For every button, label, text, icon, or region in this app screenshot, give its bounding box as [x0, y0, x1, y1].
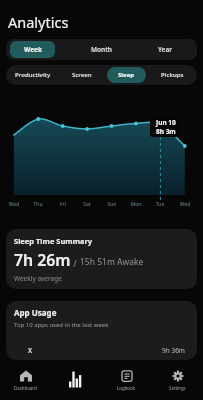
staticText: Wed: [174, 201, 196, 208]
button[interactable]: Month: [69, 39, 133, 60]
staticText: Sleep: [118, 71, 135, 79]
button[interactable]: Sleep Time Summary: [6, 229, 197, 289]
button[interactable]: Year: [133, 39, 197, 60]
button[interactable]: Dashboard: [0, 360, 50, 400]
staticText: Weekly average: [14, 274, 62, 283]
button[interactable]: Week: [6, 39, 69, 60]
staticText: Week: [24, 45, 42, 54]
staticText: Fri: [52, 201, 74, 208]
staticText: Pickups: [161, 71, 184, 79]
staticText: App Usage: [14, 307, 57, 318]
staticText: Month: [91, 45, 112, 54]
staticText: Sun: [101, 201, 123, 208]
staticText: /: [71, 257, 80, 269]
staticText: 15h 51m Awake: [80, 256, 144, 268]
staticText: Sat: [76, 201, 98, 208]
staticText: Screen: [72, 71, 92, 79]
staticText: Top 10 apps used in the last week: [14, 321, 109, 329]
button[interactable]: Screen: [59, 65, 105, 85]
staticText: Year: [158, 45, 173, 54]
staticText: Mon: [125, 201, 147, 208]
staticText: Logbook: [117, 385, 136, 391]
staticText: Analytics: [8, 12, 69, 32]
button[interactable]: Logbook: [101, 360, 152, 400]
button[interactable]: Productivity: [6, 65, 59, 85]
staticText: Dashboard: [14, 385, 37, 391]
button[interactable]: [50, 360, 101, 400]
button[interactable]: Sleep: [105, 65, 147, 85]
button[interactable]: Settings: [152, 360, 203, 400]
staticText: 9h 36m: [162, 346, 185, 355]
staticText: Sleep Time Summary: [14, 236, 93, 246]
button[interactable]: Pickups: [147, 65, 197, 85]
staticText: Thu: [27, 201, 49, 208]
staticText: 8h 3m: [156, 127, 176, 136]
staticText: 7h 26m: [14, 249, 71, 271]
staticText: Jun 10: [156, 118, 176, 127]
staticText: Tue: [149, 201, 171, 208]
staticText: X: [28, 346, 32, 355]
staticText: Settings: [169, 385, 186, 391]
button[interactable]: App Usage: [6, 301, 197, 360]
staticText: Productivity: [15, 71, 51, 79]
staticText: Wed: [3, 201, 25, 208]
